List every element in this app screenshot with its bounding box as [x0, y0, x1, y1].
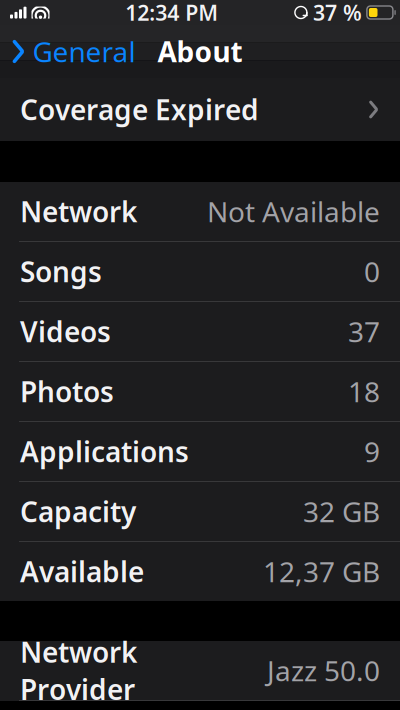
staticText: Network Provider: [20, 633, 137, 708]
button[interactable]: Network Provider: [0, 641, 400, 700]
staticText: Capacity: [20, 493, 136, 530]
button[interactable]: Applications: [0, 422, 400, 481]
staticText: Songs: [20, 253, 102, 290]
staticText: 12,37 GB: [263, 553, 380, 590]
staticText: Not Available: [207, 193, 380, 230]
button[interactable]: Capacity: [0, 482, 400, 541]
button[interactable]: Songs: [0, 242, 400, 301]
staticText: Videos: [20, 313, 111, 350]
staticText: 12:34 PM: [125, 0, 218, 27]
button[interactable]: Network: [0, 182, 400, 241]
button[interactable]: General: [0, 24, 135, 79]
staticText: 32 GB: [303, 493, 380, 530]
staticText: 37: [348, 313, 380, 350]
staticText: Network: [20, 193, 137, 230]
staticText: 37 %: [313, 0, 362, 27]
staticText: Coverage Expired: [20, 91, 259, 128]
staticText: 0: [364, 253, 380, 290]
button[interactable]: Videos: [0, 302, 400, 361]
button[interactable]: Photos: [0, 362, 400, 421]
staticText: About: [157, 33, 242, 70]
staticText: Available: [20, 553, 144, 590]
staticText: 18: [348, 373, 380, 410]
staticText: Jazz 50.0: [267, 652, 380, 689]
button[interactable]: Coverage Expired: [0, 78, 400, 141]
button[interactable]: Available: [0, 542, 400, 601]
staticText: General: [32, 33, 135, 70]
staticText: Applications: [20, 433, 189, 470]
staticText: 9: [364, 433, 380, 470]
staticText: Photos: [20, 373, 114, 410]
